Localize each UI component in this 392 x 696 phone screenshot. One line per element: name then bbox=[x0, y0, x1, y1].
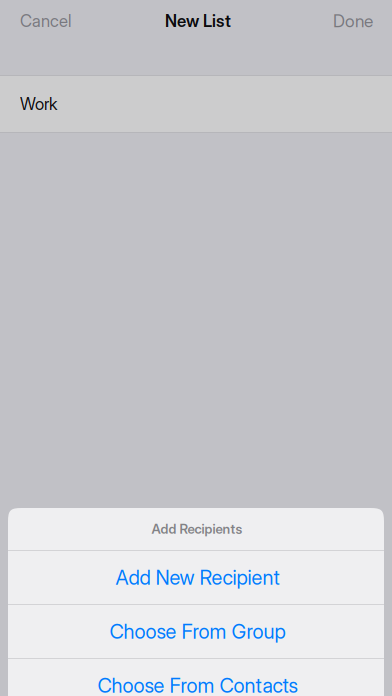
staticText: Work bbox=[20, 94, 57, 114]
button[interactable]: Choose From Contacts bbox=[8, 659, 384, 696]
button[interactable]: Work bbox=[0, 76, 392, 132]
button[interactable]: Choose From Group bbox=[8, 605, 384, 658]
staticText: Add Recipients bbox=[151, 521, 242, 537]
staticText: Choose From Contacts bbox=[97, 673, 297, 696]
button[interactable]: Add New Recipient bbox=[8, 551, 384, 604]
staticText: Cancel bbox=[20, 11, 71, 31]
button[interactable]: Cancel bbox=[0, 0, 83, 42]
staticText: Choose From Group bbox=[109, 619, 285, 644]
button[interactable]: Done bbox=[321, 0, 392, 42]
staticText: Done bbox=[333, 10, 373, 31]
staticText: Add New Recipient bbox=[115, 565, 279, 590]
staticText: New List bbox=[165, 11, 231, 31]
